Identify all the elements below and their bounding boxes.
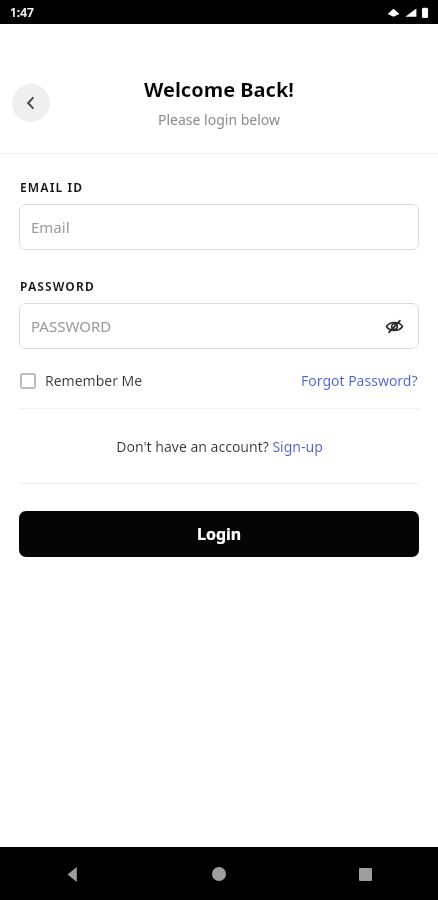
button[interactable]: Back xyxy=(53,854,93,894)
staticText: Remember Me xyxy=(45,371,143,390)
staticText: Email xyxy=(31,217,407,237)
staticText: 1:47 xyxy=(10,4,34,20)
button[interactable]: Login xyxy=(19,511,419,557)
staticText: EMAIL ID xyxy=(20,179,84,195)
button[interactable]: Back xyxy=(12,84,50,122)
button[interactable]: Show password xyxy=(381,313,407,339)
staticText: Don't have an account? Sign-up xyxy=(116,437,323,456)
staticText: Login xyxy=(197,523,242,545)
button[interactable]: Remember Me xyxy=(20,371,143,390)
button[interactable]: Forgot Password? xyxy=(301,371,418,390)
button[interactable]: Don't have an account? Sign-up xyxy=(116,437,323,456)
staticText: PASSWORD xyxy=(31,316,381,336)
staticText: Please login below xyxy=(158,110,280,129)
staticText: Welcome Back! xyxy=(144,76,294,103)
staticText: PASSWORD xyxy=(20,278,95,294)
button[interactable]: Home xyxy=(199,854,239,894)
staticText: Forgot Password? xyxy=(301,371,418,390)
button[interactable]: PASSWORD xyxy=(19,303,419,349)
button[interactable]: Recents xyxy=(345,854,385,894)
button[interactable]: Email xyxy=(19,204,419,250)
